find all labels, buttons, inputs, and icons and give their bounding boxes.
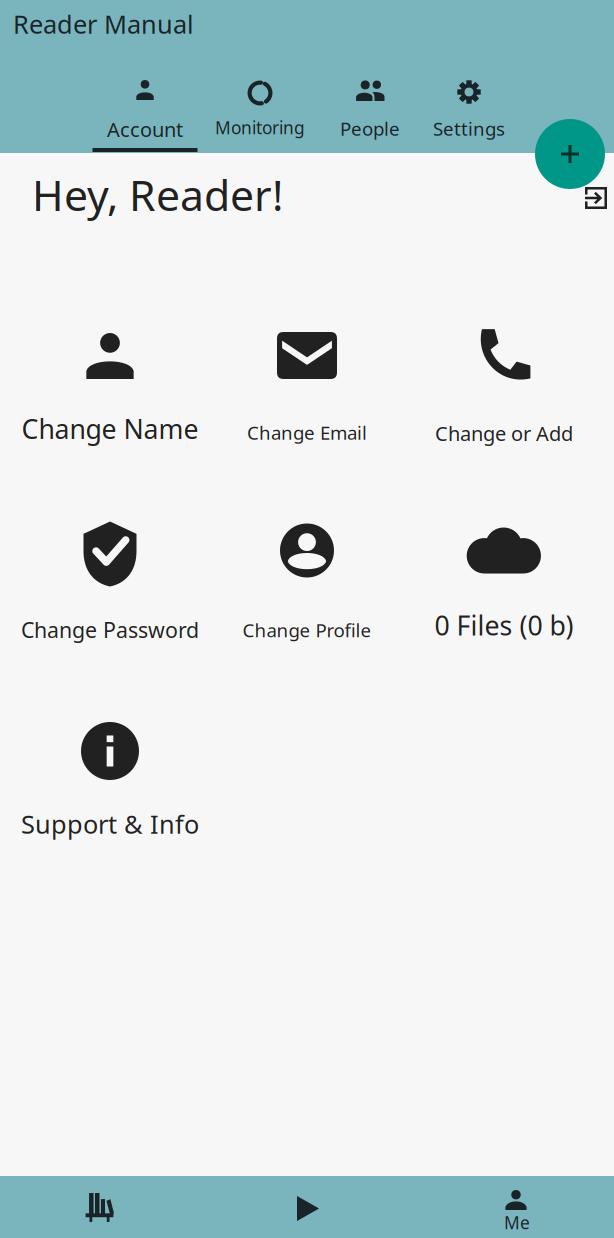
staticText: Change Profile <box>242 617 371 642</box>
button[interactable]: Change or Add <box>405 310 602 460</box>
staticText: Me <box>504 1211 530 1234</box>
staticText: Reader Manual <box>13 7 194 41</box>
staticText: 0 Files (0 b) <box>434 607 573 643</box>
staticText: Change Name <box>21 411 198 446</box>
button[interactable]: Change Profile <box>208 507 405 657</box>
staticText: Account <box>107 116 183 143</box>
button[interactable]: Settings <box>415 70 523 153</box>
button[interactable]: Monitoring <box>206 70 314 153</box>
button[interactable]: Play <box>205 1176 409 1238</box>
button[interactable]: Change Password <box>11 507 208 657</box>
staticText: Change or Add <box>435 420 573 447</box>
button[interactable]: Change Name <box>11 310 208 460</box>
staticText: Hey, Reader! <box>32 166 283 223</box>
button[interactable]: Add <box>535 119 605 189</box>
staticText: Settings <box>433 116 505 141</box>
staticText: Change Email <box>247 420 367 445</box>
button[interactable]: Account <box>91 70 199 153</box>
button[interactable]: Log out <box>576 178 614 218</box>
button[interactable]: Library <box>0 1176 205 1238</box>
button[interactable]: People <box>316 70 424 153</box>
button[interactable]: 0 Files (0 b) <box>405 507 602 657</box>
button[interactable]: Me <box>409 1176 614 1238</box>
staticText: Change Password <box>21 615 199 644</box>
button[interactable]: Support & Info <box>11 705 208 855</box>
staticText: People <box>340 116 400 141</box>
staticText: Monitoring <box>215 116 305 139</box>
staticText: Support & Info <box>21 807 199 841</box>
button[interactable]: Change Email <box>208 310 405 460</box>
